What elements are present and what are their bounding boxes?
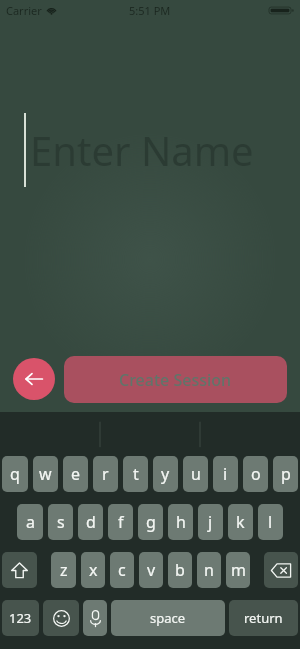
staticText: h: [176, 511, 186, 533]
button[interactable]: Emoji: [43, 600, 79, 636]
button[interactable]: p: [273, 456, 298, 492]
button[interactable]: k: [228, 504, 253, 540]
staticText: q: [10, 463, 20, 485]
staticText: s: [57, 511, 65, 533]
staticText: b: [175, 559, 185, 581]
button[interactable]: j: [198, 504, 223, 540]
button[interactable]: l: [258, 504, 283, 540]
staticText: e: [71, 463, 81, 485]
button[interactable]: c: [110, 552, 134, 588]
staticText: return: [244, 609, 283, 627]
button[interactable]: f: [108, 504, 133, 540]
button[interactable]: 123: [2, 600, 39, 636]
staticText: l: [268, 511, 273, 533]
button[interactable]: o: [243, 456, 268, 492]
button[interactable]: r: [93, 456, 118, 492]
staticText: f: [118, 511, 124, 533]
button[interactable]: Shift: [2, 552, 37, 588]
staticText: p: [281, 463, 291, 485]
button[interactable]: m: [226, 552, 250, 588]
staticText: Carrier: [6, 3, 42, 18]
staticText: w: [39, 463, 52, 485]
staticText: 5:51 PM: [129, 3, 171, 18]
button[interactable]: z: [51, 552, 76, 588]
staticText: Create Session: [119, 369, 232, 391]
staticText: c: [118, 559, 126, 581]
staticText: x: [89, 559, 98, 581]
staticText: u: [191, 463, 201, 485]
button[interactable]: Dictation: [83, 600, 107, 636]
staticText: Enter Name: [30, 123, 254, 177]
button[interactable]: Backspace: [264, 552, 298, 588]
staticText: o: [251, 463, 261, 485]
staticText: 123: [9, 609, 32, 627]
staticText: a: [26, 511, 35, 533]
staticText: t: [133, 463, 139, 485]
button[interactable]: s: [48, 504, 73, 540]
button[interactable]: n: [197, 552, 221, 588]
button[interactable]: t: [123, 456, 148, 492]
staticText: r: [102, 463, 109, 485]
button[interactable]: g: [138, 504, 163, 540]
button[interactable]: u: [183, 456, 208, 492]
staticText: d: [86, 511, 96, 533]
button[interactable]: d: [78, 504, 103, 540]
button[interactable]: i: [213, 456, 238, 492]
staticText: m: [231, 559, 246, 581]
button[interactable]: x: [81, 552, 105, 588]
staticText: n: [204, 559, 214, 581]
staticText: space: [150, 609, 186, 627]
staticText: g: [146, 511, 156, 533]
button[interactable]: Create Session: [64, 356, 287, 403]
staticText: j: [208, 511, 213, 533]
button[interactable]: space: [111, 600, 225, 636]
button[interactable]: return: [229, 600, 298, 636]
staticText: k: [236, 511, 245, 533]
button[interactable]: q: [2, 456, 28, 492]
staticText: v: [147, 559, 156, 581]
button[interactable]: v: [139, 552, 163, 588]
staticText: i: [223, 463, 228, 485]
button[interactable]: Back: [13, 358, 55, 400]
button[interactable]: a: [17, 504, 43, 540]
button[interactable]: h: [168, 504, 193, 540]
button[interactable]: b: [168, 552, 192, 588]
button[interactable]: y: [153, 456, 178, 492]
button[interactable]: w: [33, 456, 58, 492]
button[interactable]: e: [63, 456, 88, 492]
staticText: z: [60, 559, 68, 581]
staticText: y: [161, 463, 170, 485]
